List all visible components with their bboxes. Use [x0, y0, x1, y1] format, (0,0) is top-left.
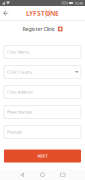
staticText: Register Clinic — [22, 25, 55, 33]
button[interactable]: Clinic Country — [4, 65, 81, 78]
staticText: Phone Number — [7, 109, 33, 115]
staticText: Clinic Country — [7, 69, 32, 75]
staticText: Clinic Name — [7, 49, 29, 55]
staticText: 76% — [61, 0, 68, 6]
button[interactable]: Postcode — [4, 125, 81, 138]
button[interactable]: Home — [35, 168, 49, 180]
button[interactable]: Clinic Address — [4, 85, 81, 98]
button[interactable]: Clinic Name — [4, 45, 81, 58]
button[interactable]: Recents — [56, 168, 70, 180]
staticText: LYFSTONE — [26, 9, 59, 18]
button[interactable]: Back — [15, 168, 29, 180]
button[interactable]: NEXT — [4, 149, 81, 162]
staticText: Clinic Address — [7, 89, 33, 95]
staticText: 10:48 — [74, 0, 83, 6]
staticText: NEXT — [37, 153, 47, 159]
button[interactable]: Phone Number — [4, 105, 81, 118]
button[interactable]: Back — [0, 6, 12, 20]
staticText: Postcode — [7, 129, 22, 135]
